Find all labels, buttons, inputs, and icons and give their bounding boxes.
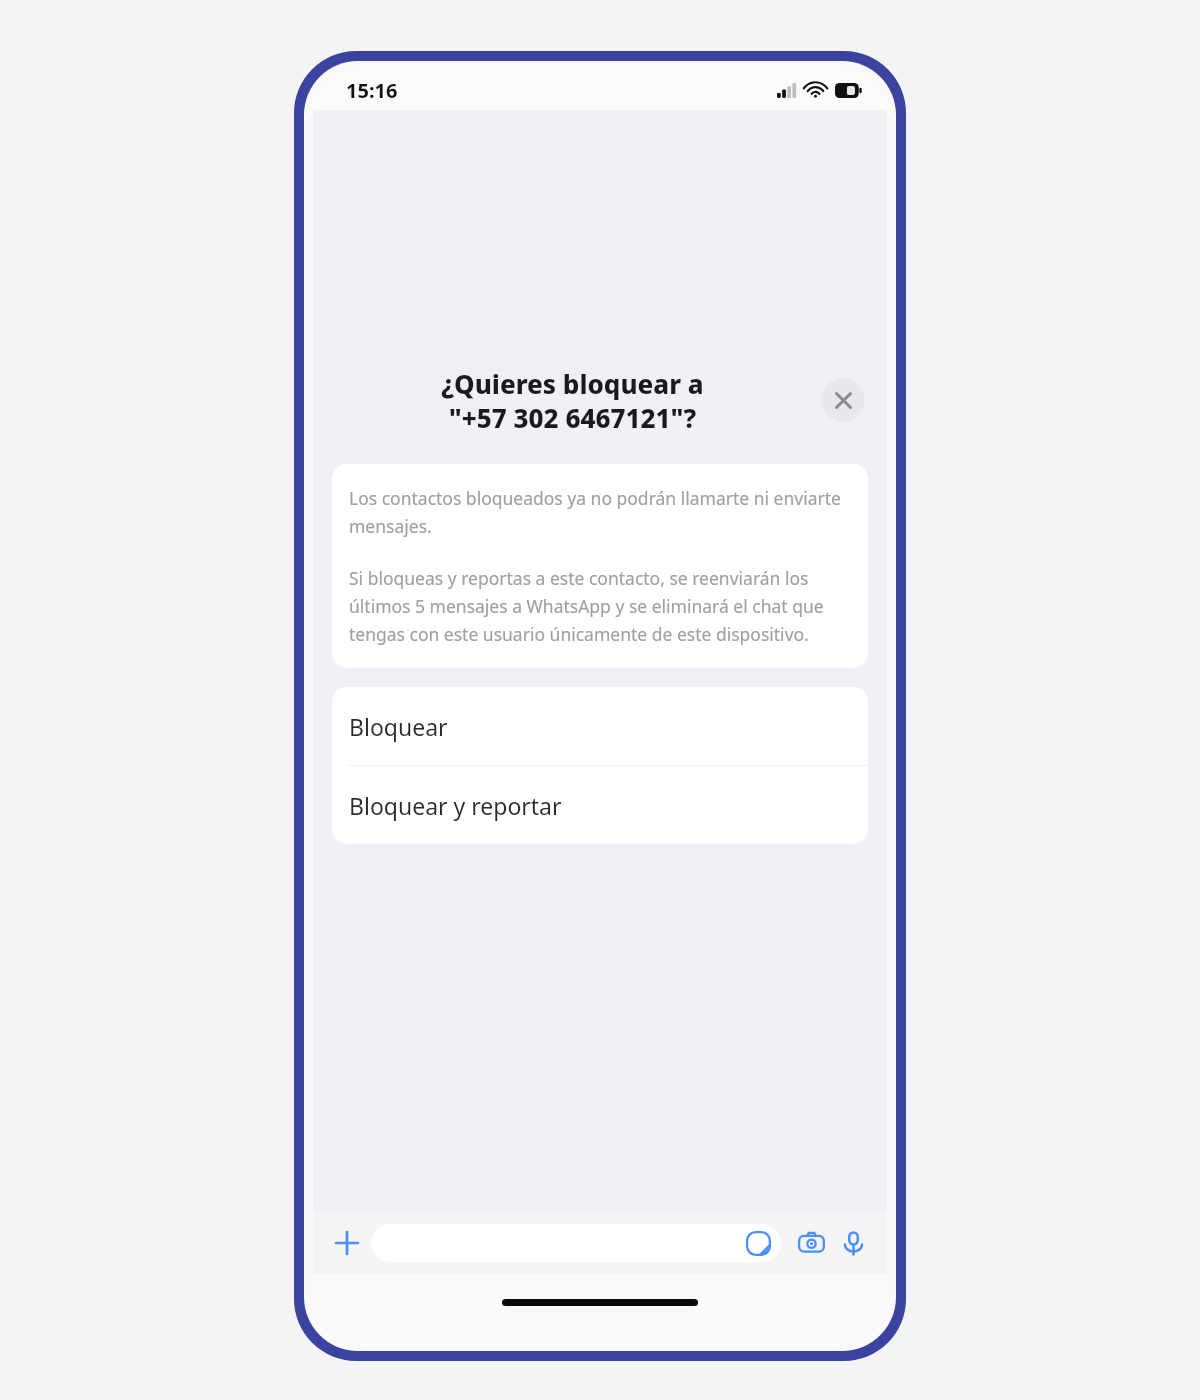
- staticText: Bloquear: [349, 711, 448, 742]
- staticText: Bloquear y reportar: [349, 790, 562, 821]
- button[interactable]: Adjuntar: [327, 1223, 367, 1263]
- staticText: 15:16: [346, 77, 398, 104]
- button[interactable]: Bloquear y reportar: [332, 766, 868, 844]
- staticText: Los contactos bloqueados ya no podrán ll…: [349, 486, 851, 538]
- button[interactable]: Cámara: [791, 1223, 831, 1263]
- button[interactable]: Stickers: [371, 1224, 781, 1262]
- staticText: Si bloqueas y reportas a este contacto, …: [349, 566, 851, 646]
- button[interactable]: Stickers: [742, 1227, 774, 1259]
- button[interactable]: Bloquear: [332, 687, 868, 765]
- staticText: ¿Quieres bloquear a "+57 302 6467121"?: [441, 366, 704, 435]
- button[interactable]: Mensaje de voz: [833, 1223, 873, 1263]
- button[interactable]: Cerrar: [821, 378, 865, 422]
